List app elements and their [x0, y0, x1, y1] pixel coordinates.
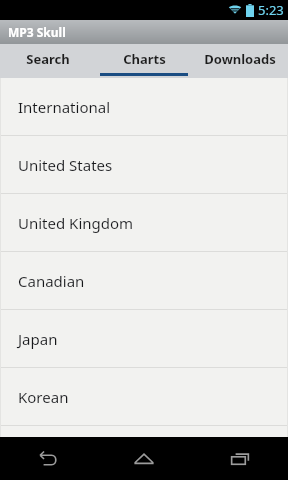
staticText: Charts: [123, 50, 166, 68]
staticText: United Kingdom: [18, 213, 134, 233]
staticText: Japan: [18, 329, 58, 349]
button[interactable]: Back: [0, 437, 96, 480]
button[interactable]: Canadian: [0, 252, 288, 310]
staticText: MP3 Skull: [8, 24, 66, 40]
button[interactable]: Recent apps: [192, 437, 288, 480]
button[interactable]: Search: [0, 44, 96, 78]
button[interactable]: Downloads: [192, 44, 288, 78]
staticText: Downloads: [204, 50, 276, 68]
button[interactable]: Home: [96, 437, 192, 480]
button[interactable]: Japan: [0, 310, 288, 368]
button[interactable]: International: [0, 78, 288, 136]
staticText: Canadian: [18, 271, 85, 291]
button[interactable]: United Kingdom: [0, 194, 288, 252]
staticText: Search: [26, 50, 70, 68]
staticText: Korean: [18, 387, 69, 407]
staticText: International: [18, 97, 111, 117]
button[interactable]: Korean: [0, 368, 288, 426]
button[interactable]: Charts: [96, 44, 192, 78]
staticText: 5:23: [258, 1, 284, 19]
button[interactable]: United States: [0, 136, 288, 194]
staticText: United States: [18, 155, 113, 175]
